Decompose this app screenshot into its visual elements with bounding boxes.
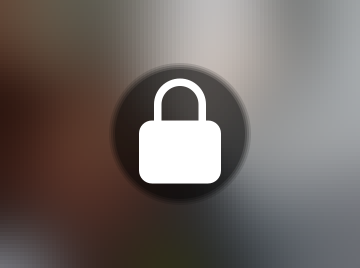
button[interactable]: Unlock	[110, 64, 250, 204]
